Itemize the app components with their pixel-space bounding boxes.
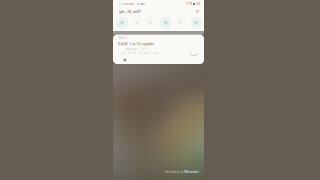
staticText: RAM 1 ac10 capable <box>118 41 154 46</box>
staticText: 77% <box>186 2 193 6</box>
button[interactable]: Images <box>175 17 186 28</box>
button[interactable]: Calendar <box>160 17 171 28</box>
staticText: INBOX <box>118 36 127 40</box>
staticText: 11:46 ADJ · 4 min <box>119 2 145 6</box>
staticText: 5G <box>195 2 200 6</box>
staticText: to me, from 1 dot and 2 more <box>118 51 160 55</box>
staticText: Recorded by <box>165 170 183 174</box>
button[interactable]: gas, 24, waff <box>113 8 204 15</box>
staticText: Unknown · Tue 1 <box>125 47 149 51</box>
button[interactable]: Unread <box>132 17 143 28</box>
button[interactable]: Starred <box>145 17 156 28</box>
button[interactable]: Attachments <box>116 17 127 28</box>
staticText: XRecorder <box>183 170 199 174</box>
staticText: gas, 24, waff <box>119 9 141 14</box>
button[interactable]: INBOX <box>113 34 204 64</box>
button[interactable]: From anyone <box>191 17 202 28</box>
